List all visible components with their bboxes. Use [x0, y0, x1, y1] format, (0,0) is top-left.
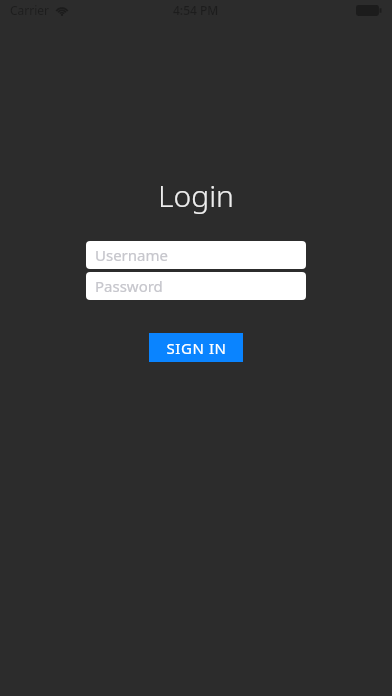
other: Battery full [356, 5, 382, 16]
button[interactable]: Password [86, 272, 306, 300]
staticText: SIGN IN [166, 338, 227, 358]
staticText: Login [158, 175, 234, 216]
button[interactable]: Username [86, 241, 306, 269]
staticText: Username [95, 245, 168, 265]
button[interactable]: SIGN IN [149, 333, 243, 362]
other: Wi-Fi signal [55, 5, 69, 16]
staticText: Password [95, 276, 163, 296]
staticText: Carrier [10, 2, 50, 18]
staticText: 4:54 PM [173, 2, 219, 18]
